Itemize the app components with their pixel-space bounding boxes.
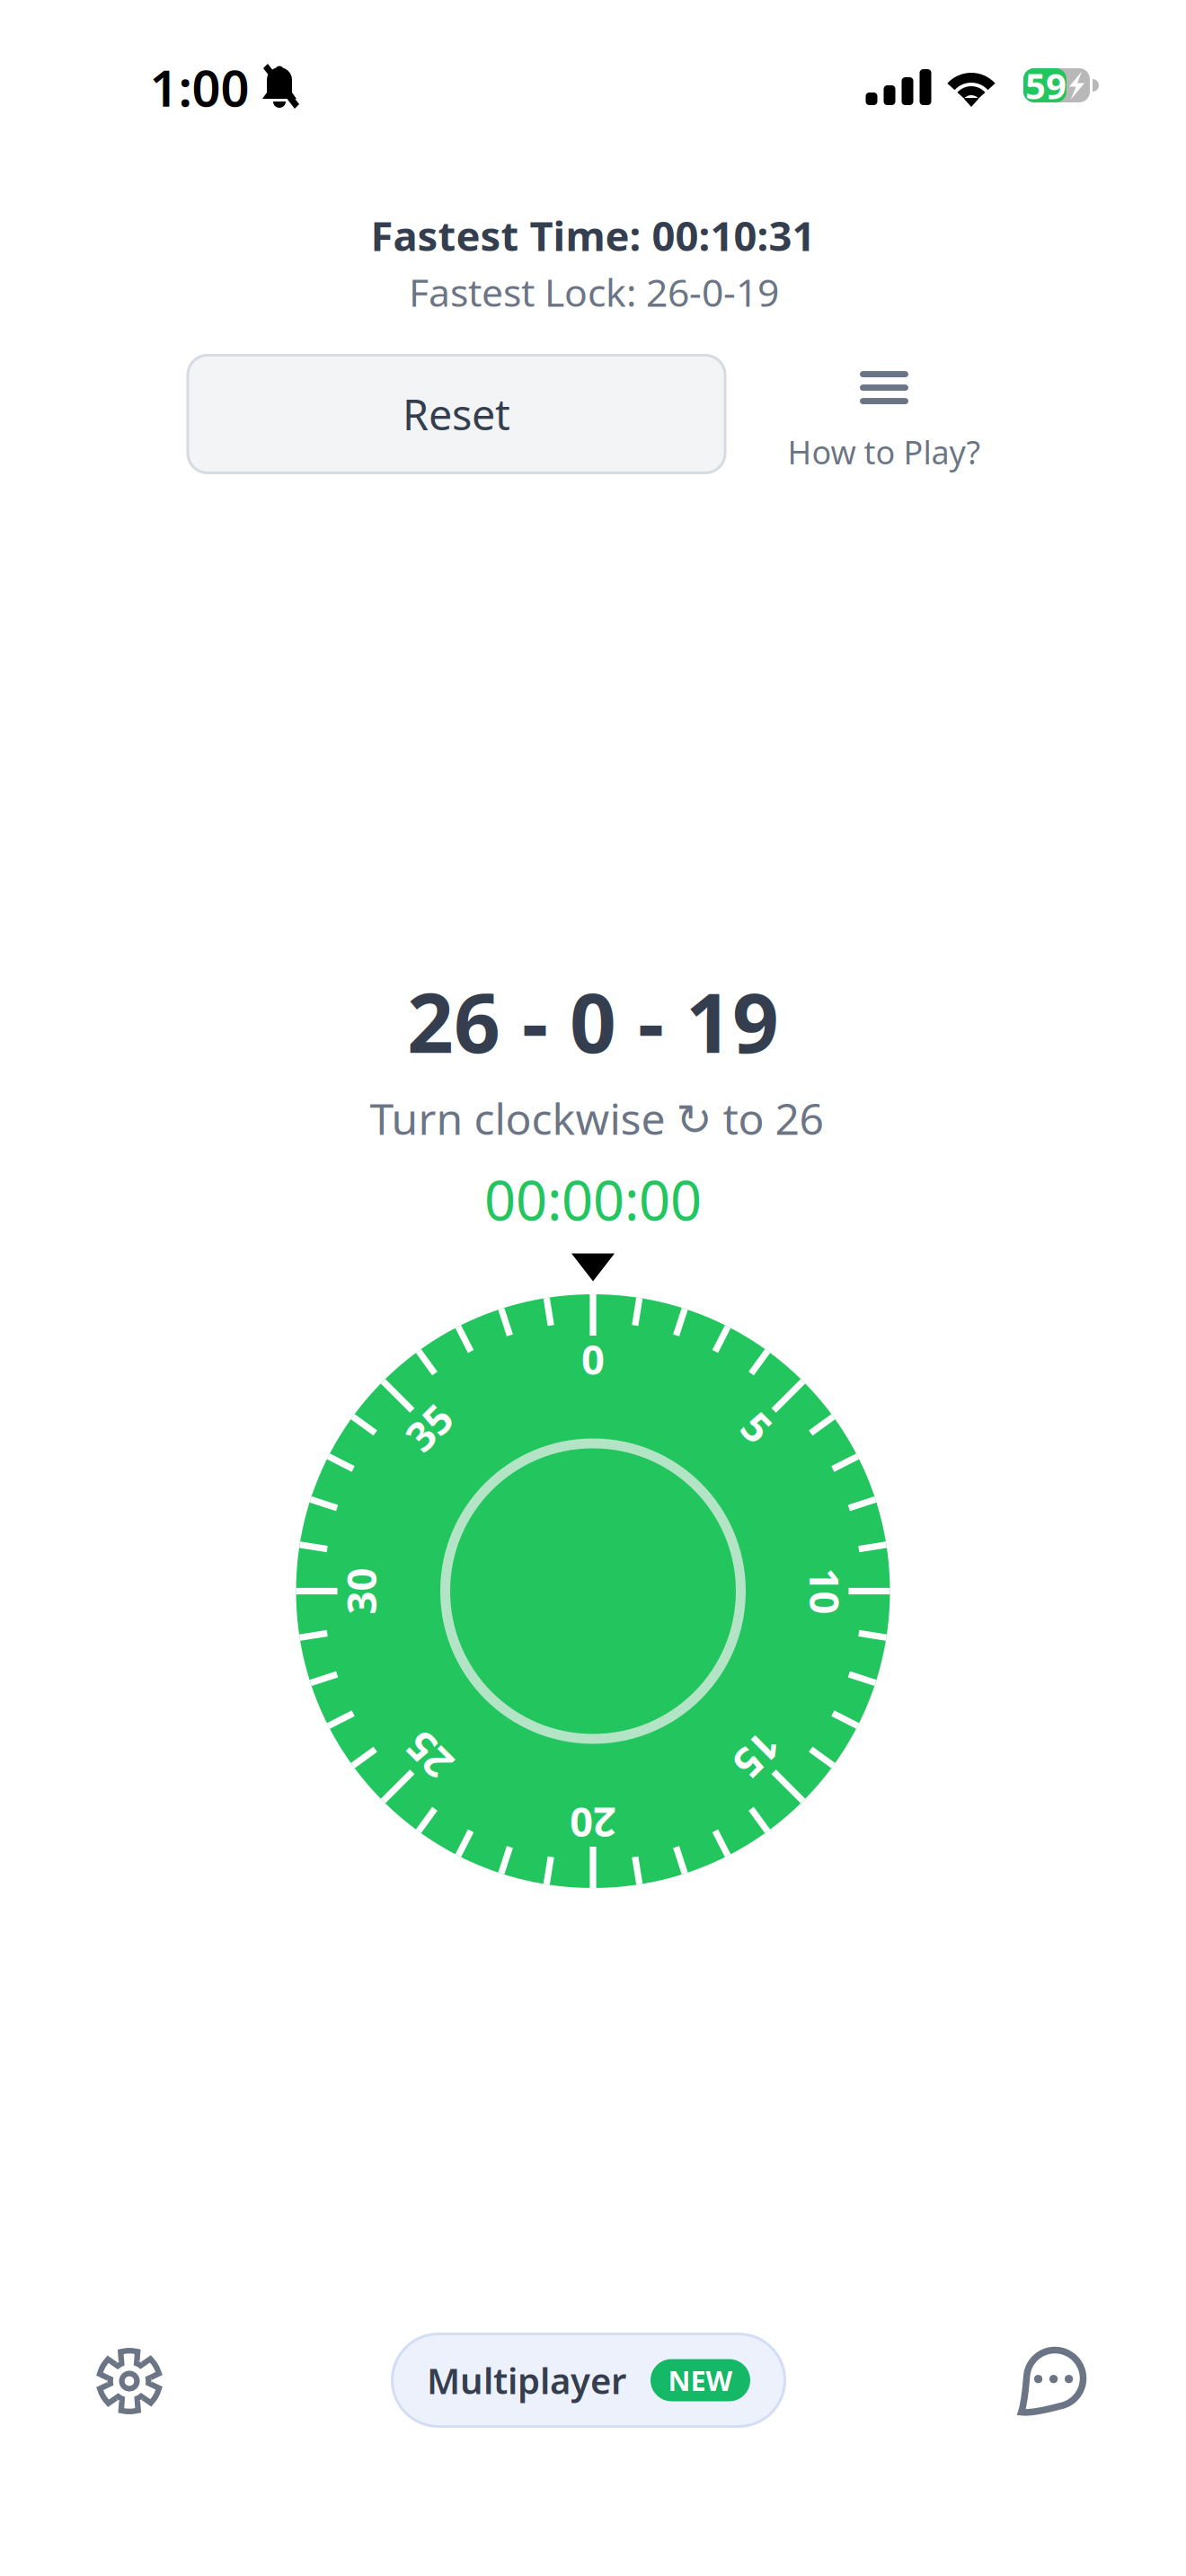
staticText: 30: [337, 1564, 384, 1618]
button[interactable]: How to Play?: [788, 371, 981, 473]
staticText: 25: [405, 1728, 452, 1782]
staticText: Fastest Lock: 26-0-19: [409, 266, 779, 317]
staticText: Reset: [403, 386, 510, 442]
staticText: 35: [405, 1400, 452, 1454]
staticText: Multiplayer: [427, 2356, 626, 2404]
staticText: NEW: [668, 2362, 733, 2398]
button[interactable]: Reset: [188, 355, 725, 473]
button[interactable]: Multiplayer: [392, 2334, 785, 2426]
staticText: Turn clockwise ↻ to 26: [370, 1090, 823, 1147]
staticText: 15: [734, 1728, 781, 1782]
staticText: 5: [746, 1400, 769, 1454]
staticText: 0: [581, 1332, 605, 1386]
staticText: 00:00:00: [484, 1163, 702, 1236]
staticText: 20: [570, 1796, 616, 1850]
staticText: 59: [1025, 61, 1067, 109]
staticText: 26 - 0 - 19: [407, 967, 779, 1075]
button[interactable]: Chat: [1018, 2349, 1084, 2415]
staticText: 10: [802, 1564, 849, 1618]
staticText: Fastest Time: 00:10:31: [371, 208, 815, 262]
staticText: How to Play?: [788, 430, 981, 473]
staticText: 1:00: [150, 54, 249, 121]
button[interactable]: Settings: [100, 2351, 159, 2411]
